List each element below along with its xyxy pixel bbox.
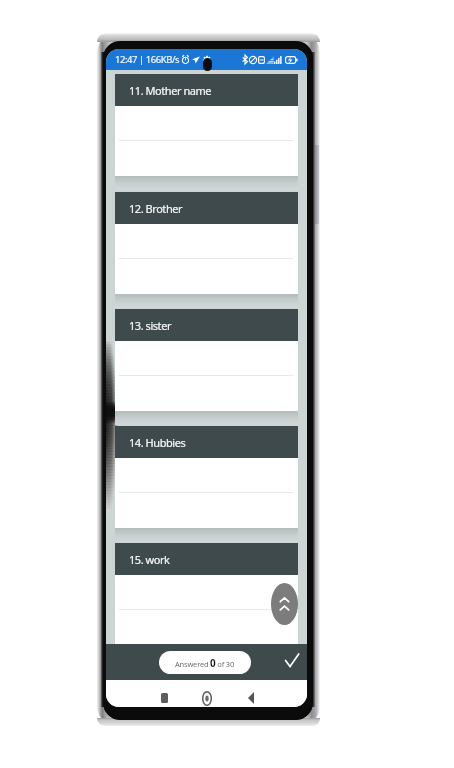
- staticText: 15. work: [129, 552, 170, 567]
- button[interactable]: Submit: [280, 648, 303, 672]
- button[interactable]: 11. Mother name: [115, 74, 298, 190]
- staticText: Answered 0 of 30: [175, 656, 235, 670]
- staticText: 12. Brother: [129, 201, 183, 216]
- staticText: 11. Mother name: [129, 83, 212, 98]
- staticText: 13. sister: [129, 318, 171, 333]
- button[interactable]: Back: [238, 686, 264, 707]
- button[interactable]: Home: [194, 686, 220, 707]
- button[interactable]: Recents: [151, 686, 177, 707]
- button[interactable]: Scroll to top: [271, 583, 298, 625]
- button[interactable]: Answered 0 of 30: [159, 651, 251, 674]
- staticText: 14. Hubbies: [129, 435, 186, 450]
- button[interactable]: 15. work: [115, 543, 298, 659]
- button[interactable]: 13. sister: [115, 309, 298, 425]
- button[interactable]: 14. Hubbies: [115, 426, 298, 542]
- staticText: 12:47 | 166KB/s: [115, 53, 180, 66]
- button[interactable]: 12. Brother: [115, 192, 298, 308]
